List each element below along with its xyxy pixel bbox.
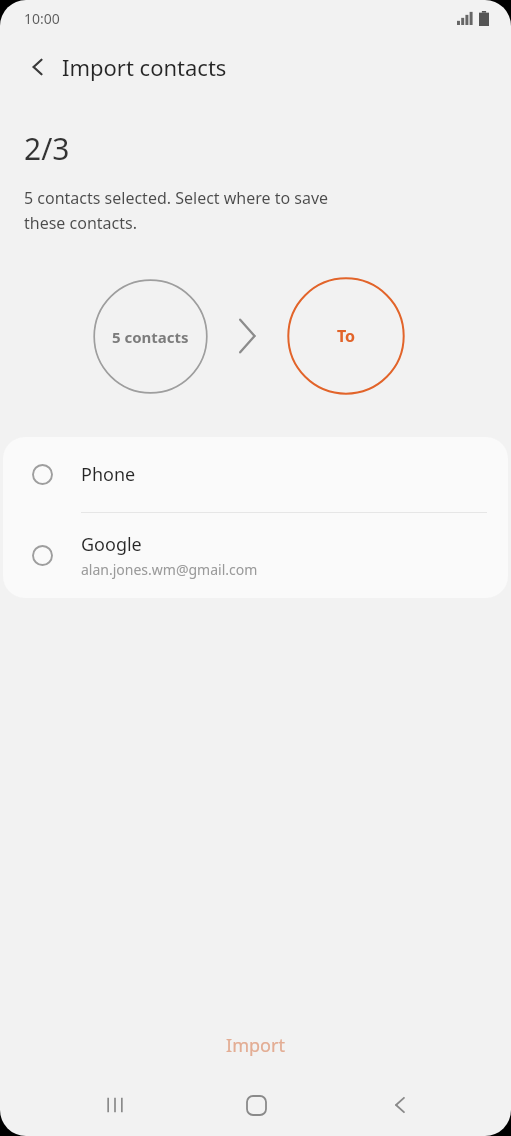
staticText: Import contacts [62,52,227,82]
staticText: 10:00 [24,9,60,28]
staticText: Google [81,532,142,557]
button[interactable]: Google [3,513,508,598]
staticText: Import [226,1033,285,1058]
staticText: 5 contacts [112,327,189,347]
button[interactable]: Phone [3,437,508,512]
staticText: 2/3 [24,128,70,169]
staticText: Phone [81,462,136,487]
button[interactable]: Back [376,1081,424,1129]
button[interactable]: Back [14,43,62,91]
staticText: To [337,325,356,347]
button[interactable]: Recent apps [91,1081,139,1129]
button[interactable]: Import [0,1016,511,1074]
button[interactable]: To [287,277,405,395]
button[interactable]: Home [232,1081,280,1129]
staticText: 5 contacts selected. Select where to sav… [24,187,329,233]
button[interactable]: 5 contacts [93,279,208,394]
staticText: alan.jones.wm@gmail.com [81,560,258,579]
